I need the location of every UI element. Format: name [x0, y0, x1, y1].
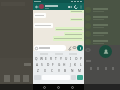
button[interactable]: G [57, 62, 61, 68]
button[interactable]: L [79, 62, 83, 68]
staticText: P [80, 57, 82, 61]
button[interactable]: N [70, 68, 74, 74]
button[interactable]: O [74, 56, 78, 62]
staticText: D [47, 63, 50, 67]
button[interactable]: Record voice message [77, 45, 83, 51]
button[interactable]: X [43, 68, 47, 74]
button[interactable] [84, 14, 120, 22]
button[interactable]: Camera [85, 47, 91, 53]
staticText: X [44, 69, 46, 73]
button[interactable]: Attach [67, 45, 72, 50]
button[interactable]: P [79, 56, 83, 62]
button[interactable]: E [44, 56, 48, 62]
button[interactable]: Recents [70, 85, 75, 90]
button[interactable]: H [62, 62, 66, 68]
staticText: W [40, 57, 43, 61]
button[interactable]: V [57, 68, 61, 74]
button[interactable] [84, 6, 120, 14]
staticText: J [70, 63, 71, 67]
staticText: E [45, 57, 47, 61]
button[interactable]: M [77, 68, 81, 74]
button[interactable]: Q [34, 56, 38, 62]
staticText: U [65, 57, 68, 61]
button[interactable]: Back [34, 4, 39, 9]
button[interactable]: F [51, 62, 55, 68]
staticText: G [58, 63, 61, 67]
button[interactable]: J [68, 62, 72, 68]
button[interactable] [84, 22, 120, 30]
button[interactable] [34, 45, 66, 51]
button[interactable]: Z [36, 68, 40, 74]
button[interactable]: R [49, 56, 53, 62]
staticText: O [75, 57, 78, 61]
button[interactable]: Call [73, 4, 78, 9]
staticText: R [50, 57, 53, 61]
button[interactable] [84, 38, 120, 45]
staticText: C [51, 69, 54, 73]
staticText: Z [37, 69, 39, 73]
button[interactable]: Camera [72, 45, 77, 50]
staticText: F [52, 63, 54, 67]
staticText: L [80, 63, 82, 67]
button[interactable]: A [35, 62, 39, 68]
staticText: B [64, 69, 67, 73]
button[interactable]: Y [59, 56, 63, 62]
staticText: Y [60, 57, 62, 61]
button[interactable] [55, 27, 84, 31]
staticText: V [58, 69, 60, 73]
button[interactable] [53, 36, 84, 41]
staticText: T [55, 57, 57, 61]
button[interactable]: Back [42, 85, 47, 90]
button[interactable] [77, 75, 83, 80]
button[interactable] [64, 32, 84, 36]
button[interactable]: K [73, 62, 77, 68]
button[interactable]: C [50, 68, 54, 74]
button[interactable]: I [69, 56, 73, 62]
button[interactable]: W [39, 56, 43, 62]
button[interactable]: New chat [99, 45, 112, 58]
button[interactable]: Home [56, 85, 61, 90]
staticText: K [74, 63, 77, 67]
staticText: I [70, 57, 72, 61]
button[interactable] [84, 30, 120, 38]
button[interactable]: U [64, 56, 68, 62]
button[interactable]: T [54, 56, 58, 62]
button[interactable]: Video call [67, 4, 73, 10]
staticText: M [78, 69, 81, 73]
staticText: H [63, 63, 66, 67]
staticText: N [71, 69, 74, 73]
staticText: Q [35, 57, 38, 61]
button[interactable]: S [40, 62, 44, 68]
button[interactable]: More options [78, 4, 83, 9]
button[interactable] [70, 18, 84, 21]
button[interactable] [34, 13, 46, 18]
button[interactable] [70, 10, 84, 13]
staticText: S [41, 63, 43, 67]
button[interactable]: D [46, 62, 50, 68]
button[interactable] [34, 23, 53, 28]
staticText: A [36, 63, 39, 67]
button[interactable]: B [63, 68, 67, 74]
